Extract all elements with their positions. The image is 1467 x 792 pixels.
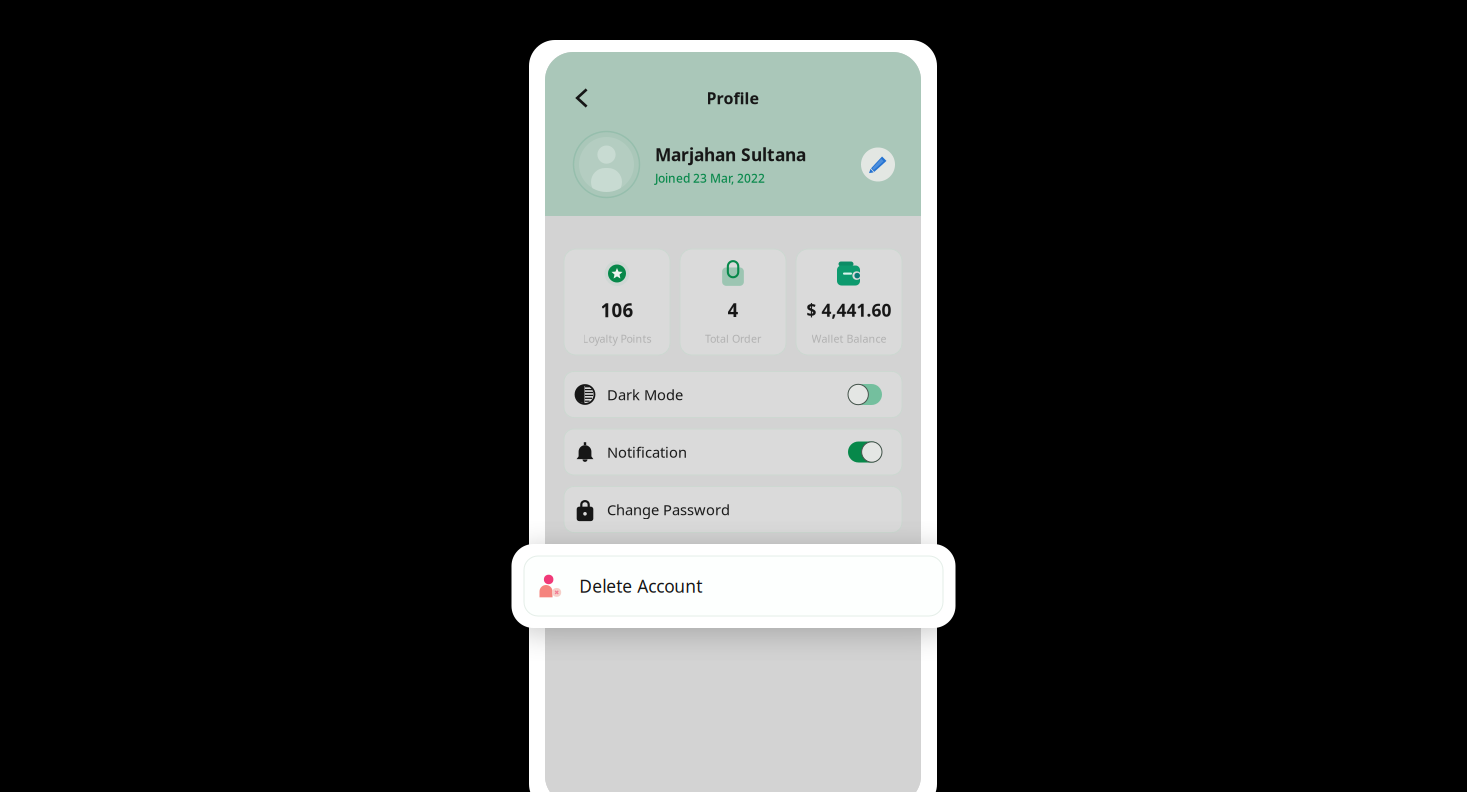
button[interactable]: Notification (564, 429, 902, 475)
staticText: Dark Mode (607, 385, 683, 404)
staticText: $ 4,441.60 (806, 298, 891, 321)
staticText: Notification (607, 442, 687, 462)
staticText: Delete Account (579, 574, 702, 597)
staticText: Total Order (705, 331, 761, 346)
staticText: Joined 23 Mar, 2022 (655, 170, 765, 186)
staticText: 106 (600, 298, 633, 322)
button[interactable]: Change Password (564, 486, 902, 532)
staticText: Change Password (607, 500, 730, 519)
button[interactable]: Dark Mode (564, 371, 902, 417)
button[interactable]: Edit profile (861, 147, 895, 181)
button[interactable]: Back (575, 82, 607, 114)
staticText: Profile (706, 87, 759, 109)
staticText: 4 (727, 298, 738, 322)
staticText: Wallet Balance (811, 331, 886, 346)
staticText: Loyalty Points (582, 331, 651, 346)
button[interactable]: Delete Account (524, 556, 943, 616)
staticText: Marjahan Sultana (655, 143, 806, 166)
